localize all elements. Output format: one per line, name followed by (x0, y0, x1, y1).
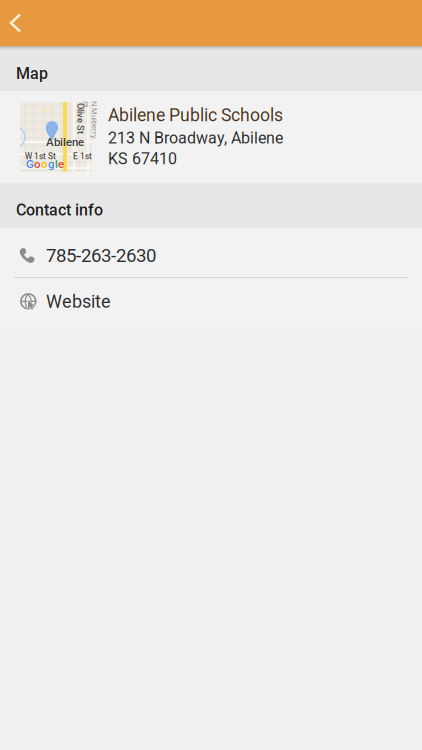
staticText: Map (16, 64, 48, 83)
staticText: Website (46, 291, 111, 312)
staticText: 213 N Broadway, Abilene (108, 129, 283, 147)
staticText: W 1st St (25, 152, 56, 161)
staticText: G (26, 157, 34, 171)
staticText: l (55, 157, 58, 171)
staticText: Abilene Public Schools (108, 105, 283, 126)
button[interactable]: Website (0, 278, 422, 325)
staticText: Olive St (65, 113, 96, 124)
staticText: N Mulberry St (71, 111, 109, 129)
staticText: Contact info (16, 201, 103, 219)
staticText: KS 67410 (108, 149, 177, 168)
button[interactable]: 785-263-2630 (0, 228, 422, 277)
staticText: g (48, 157, 55, 171)
button[interactable]: Olive St (0, 91, 422, 185)
staticText: o (34, 157, 41, 171)
staticText: E 1st (73, 152, 92, 161)
staticText: o (41, 157, 48, 171)
staticText: Abilene (46, 135, 84, 149)
button[interactable]: Back (0, 0, 48, 46)
staticText: e (58, 157, 64, 171)
staticText: 785-263-2630 (46, 245, 156, 266)
